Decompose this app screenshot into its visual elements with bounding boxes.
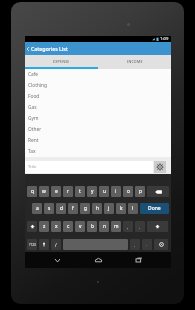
button[interactable]: Cafe (25, 69, 171, 80)
staticText: c (67, 223, 70, 230)
button[interactable]: Symbols (27, 239, 37, 250)
staticText: w (42, 188, 46, 195)
staticText: Done (148, 205, 161, 212)
button[interactable]: q (27, 186, 37, 197)
staticText: y (91, 188, 94, 195)
staticText: e (55, 188, 58, 195)
button[interactable]: Home (89, 252, 107, 268)
staticText: EXPENSE (53, 59, 70, 64)
button[interactable]: p (135, 186, 145, 197)
staticText: Clothing (28, 82, 48, 89)
button[interactable]: i (111, 186, 121, 197)
button[interactable]: INCOME (98, 55, 171, 67)
button[interactable]: Tax (25, 146, 171, 157)
staticText: f (72, 205, 74, 212)
button[interactable]: Recents (130, 252, 148, 268)
staticText: z (43, 223, 46, 230)
button[interactable]: e (51, 186, 61, 197)
staticText: a (36, 205, 39, 212)
button[interactable]: Comma (123, 221, 133, 232)
staticText: m (114, 223, 119, 230)
button[interactable]: Backspace (147, 186, 169, 197)
button[interactable]: g (80, 203, 90, 214)
staticText: n (103, 223, 106, 230)
button[interactable]: Emoji (154, 239, 168, 250)
button[interactable]: Gas (25, 102, 171, 113)
staticText: Rent (28, 137, 39, 144)
button[interactable]: v (75, 221, 85, 232)
staticText: j (108, 205, 110, 212)
button[interactable]: Slash (51, 239, 61, 250)
button[interactable]: Voice input (39, 239, 49, 250)
staticText: / (55, 242, 57, 248)
button[interactable]: Shift (147, 221, 168, 232)
button[interactable]: w (39, 186, 49, 197)
button[interactable]: Back (48, 252, 66, 268)
button[interactable]: u (99, 186, 109, 197)
staticText: u (103, 188, 106, 195)
button[interactable]: EXPENSE (25, 55, 98, 67)
button[interactable]: a (32, 203, 42, 214)
button[interactable]: n (99, 221, 109, 232)
button[interactable]: b (87, 221, 97, 232)
button[interactable]: Rent (25, 135, 171, 146)
staticText: x (55, 223, 58, 230)
staticText: q (31, 188, 34, 195)
button[interactable]: Navigate up (25, 42, 31, 55)
staticText: v (79, 223, 82, 230)
button[interactable]: Period (135, 221, 145, 232)
staticText: r (67, 188, 69, 195)
button[interactable]: d (56, 203, 66, 214)
staticText: 1:09 (160, 36, 169, 42)
button[interactable]: Title (25, 161, 153, 173)
button[interactable]: o (123, 186, 133, 197)
button[interactable]: r (63, 186, 73, 197)
staticText: Other (28, 126, 42, 133)
button[interactable]: Done (140, 203, 169, 214)
staticText: g (84, 205, 87, 212)
staticText: Title (28, 164, 37, 170)
staticText: h (96, 205, 99, 212)
staticText: Food (28, 93, 40, 100)
button[interactable]: s (44, 203, 54, 214)
button[interactable]: j (104, 203, 114, 214)
button[interactable]: t (75, 186, 85, 197)
button[interactable]: x (51, 221, 61, 232)
staticText: ?123 (29, 243, 36, 247)
staticText: p (139, 188, 142, 195)
staticText: . (146, 242, 148, 247)
button[interactable]: Food (25, 91, 171, 102)
button[interactable]: h (92, 203, 102, 214)
button[interactable]: f (68, 203, 78, 214)
staticText: . (139, 224, 141, 230)
button[interactable]: k (116, 203, 126, 214)
button[interactable]: y (87, 186, 97, 197)
staticText: Gym (28, 115, 39, 122)
button[interactable]: c (63, 221, 73, 232)
staticText: Gas (28, 104, 37, 111)
staticText: Tax (28, 148, 36, 155)
staticText: t (79, 188, 81, 195)
staticText: k (120, 205, 123, 212)
staticText: s (48, 205, 51, 212)
staticText: Cafe (28, 71, 39, 78)
staticText: l (132, 205, 134, 212)
staticText: b (91, 223, 94, 230)
staticText: INCOME (127, 59, 143, 64)
button[interactable]: Period (142, 239, 152, 250)
staticText: i (115, 188, 117, 195)
staticText: , (134, 242, 136, 247)
staticText: d (60, 205, 63, 212)
button[interactable]: Shift (27, 221, 37, 232)
button[interactable]: Other (25, 124, 171, 135)
button[interactable]: Settings (154, 161, 166, 173)
button[interactable]: Comma (130, 239, 140, 250)
button[interactable]: Clothing (25, 80, 171, 91)
button[interactable]: z (39, 221, 49, 232)
button[interactable]: m (111, 221, 121, 232)
button[interactable]: l (128, 203, 138, 214)
button[interactable]: Gym (25, 113, 171, 124)
staticText: Categories List (31, 45, 68, 52)
staticText: , (127, 224, 129, 230)
